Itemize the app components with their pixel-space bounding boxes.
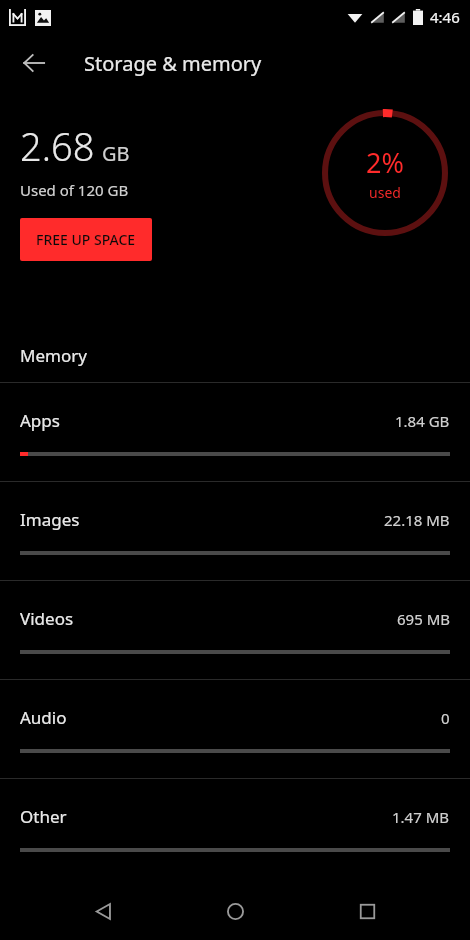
staticText: 695 MB [397, 609, 450, 629]
staticText: 4:46 [430, 7, 460, 27]
button[interactable]: Back [10, 39, 58, 87]
button[interactable]: Videos [0, 581, 470, 679]
staticText: 1.84 GB [395, 411, 450, 431]
staticText: Images [20, 508, 80, 531]
staticText: Storage & memory [84, 50, 262, 77]
staticText: Apps [20, 409, 60, 432]
button[interactable]: Images [0, 482, 470, 580]
staticText: 1.47 MB [392, 807, 450, 827]
button[interactable]: Apps [0, 383, 470, 481]
button[interactable]: Other [0, 779, 470, 877]
staticText: Audio [20, 706, 67, 729]
staticText: used [369, 183, 401, 202]
staticText: GB [102, 140, 130, 167]
staticText: Memory [20, 344, 87, 367]
button[interactable]: Back [74, 882, 132, 940]
staticText: 0 [441, 708, 450, 728]
button[interactable]: Audio [0, 680, 470, 778]
staticText: 2.68 [20, 120, 95, 172]
staticText: 22.18 MB [384, 510, 450, 530]
button[interactable]: FREE UP SPACE [20, 218, 152, 261]
staticText: Other [20, 805, 67, 828]
staticText: FREE UP SPACE [36, 230, 136, 249]
staticText: Used of 120 GB [20, 180, 129, 200]
staticText: Videos [20, 607, 74, 630]
staticText: 2% [366, 144, 404, 181]
button[interactable]: Home [206, 882, 264, 940]
button[interactable]: Recent apps [338, 882, 396, 940]
